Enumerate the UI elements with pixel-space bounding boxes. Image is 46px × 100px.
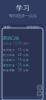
- staticText: 已完成 12/30 课时: [3, 42, 29, 45]
- button[interactable]: 课后作业 · 25 分钟: [3, 63, 40, 67]
- staticText: 单词复习 · 15 分钟: [3, 48, 29, 52]
- staticText: 英语口语: [3, 36, 19, 41]
- staticText: 阅读理解 · 30 分钟: [3, 68, 29, 72]
- staticText: 课后作业 · 25 分钟: [3, 63, 29, 67]
- staticText: 口语练习 · 10 分钟: [3, 58, 29, 62]
- staticText: 每日进步一点点: [9, 13, 37, 18]
- staticText: 听力训练 · 20 分钟: [3, 53, 29, 57]
- staticText: 学习: [16, 4, 30, 12]
- button[interactable]: 口语练习 · 10 分钟: [3, 58, 40, 62]
- staticText: 今日: [4, 25, 10, 29]
- staticText: 全部课程: [27, 25, 39, 29]
- button[interactable]: 阅读理解 · 30 分钟: [3, 68, 40, 72]
- button[interactable]: 单词复习 · 15 分钟: [3, 48, 40, 52]
- button[interactable]: 全部课程: [26, 25, 40, 29]
- button[interactable]: 听力训练 · 20 分钟: [3, 53, 40, 57]
- button[interactable]: 今日: [3, 25, 11, 29]
- button[interactable]: Compose: [37, 91, 42, 96]
- button[interactable]: Scroll to top: [37, 85, 42, 90]
